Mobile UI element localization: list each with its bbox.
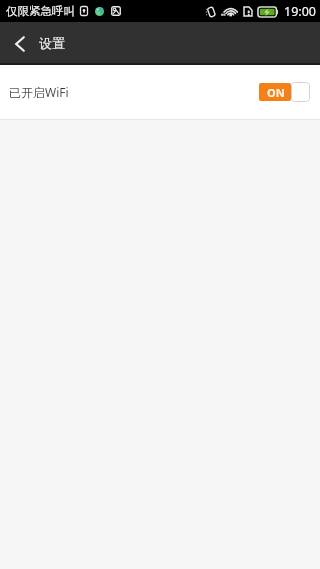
- button[interactable]: WiFi switch, on: [259, 82, 310, 102]
- button[interactable]: 已开启WiFi: [0, 65, 320, 119]
- staticText: 已开启WiFi: [9, 84, 69, 100]
- button[interactable]: Back: [0, 22, 39, 65]
- staticText: 设置: [39, 35, 65, 51]
- staticText: ON: [267, 85, 285, 100]
- staticText: 19:00: [284, 3, 316, 20]
- staticText: 仅限紧急呼叫: [6, 4, 75, 18]
